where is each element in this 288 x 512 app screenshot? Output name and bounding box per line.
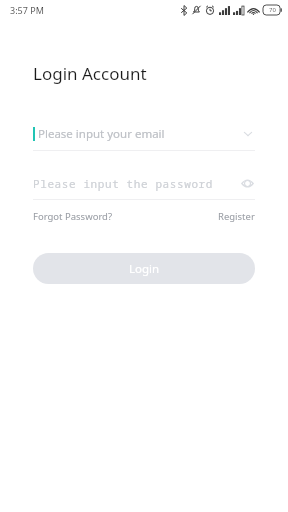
staticText: Please input your email xyxy=(38,126,165,142)
button[interactable]: Login xyxy=(33,253,255,284)
staticText: Login xyxy=(129,261,160,277)
staticText: 3:57 PM xyxy=(10,4,44,16)
button[interactable]: Please input the password xyxy=(33,172,255,194)
staticText: 70 xyxy=(269,6,276,14)
staticText: Login Account xyxy=(33,62,147,85)
button[interactable]: Please input your email xyxy=(33,123,255,145)
staticText: Register xyxy=(218,210,255,223)
staticText: Forgot Password? xyxy=(33,210,113,223)
button[interactable]: Register xyxy=(218,210,255,223)
staticText: Please input the password xyxy=(33,176,213,191)
button[interactable]: Forgot Password? xyxy=(33,210,113,223)
button[interactable]: Show password xyxy=(239,175,255,191)
button[interactable]: Show email suggestions xyxy=(241,127,255,141)
